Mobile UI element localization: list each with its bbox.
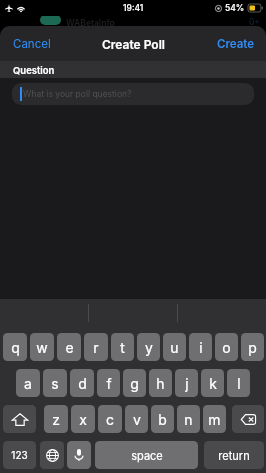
button[interactable]: c <box>98 405 122 433</box>
staticText: p <box>248 339 257 356</box>
button[interactable]: Cancel <box>0 31 61 57</box>
button[interactable]: Next keyboard <box>40 441 64 469</box>
staticText: What is your poll question? <box>23 89 132 99</box>
staticText: j <box>185 375 189 392</box>
staticText: a <box>24 375 32 392</box>
staticText: b <box>158 411 167 428</box>
staticText: space <box>131 449 163 462</box>
staticText: Create <box>217 37 255 51</box>
button[interactable]: u <box>163 333 186 361</box>
button[interactable]: e <box>57 333 81 361</box>
button[interactable]: s <box>43 369 67 397</box>
button[interactable]: v <box>125 405 148 433</box>
staticText: z <box>52 411 60 428</box>
button[interactable]: j <box>175 369 198 397</box>
button[interactable]: What is your poll question? <box>12 83 254 105</box>
button[interactable]: d <box>70 369 94 397</box>
staticText: v <box>133 411 141 428</box>
staticText: Cancel <box>13 37 51 51</box>
button[interactable]: l <box>227 369 250 397</box>
staticText: l <box>237 375 241 392</box>
button[interactable]: k <box>201 369 224 397</box>
staticText: t <box>120 339 125 356</box>
button[interactable]: i <box>189 333 212 361</box>
staticText: return <box>218 449 250 462</box>
staticText: WABetaInfo <box>66 18 115 26</box>
staticText: 54% <box>225 3 245 13</box>
staticText: 0+ <box>249 17 260 26</box>
staticText: n <box>184 411 193 428</box>
button[interactable]: Dictation <box>67 441 91 469</box>
button[interactable]: Shift <box>3 405 36 433</box>
staticText: i <box>199 339 203 356</box>
staticText: x <box>79 411 87 428</box>
button[interactable]: m <box>203 405 226 433</box>
staticText: Question <box>13 65 55 76</box>
staticText: y <box>145 339 153 356</box>
button[interactable]: a <box>16 369 40 397</box>
button[interactable]: h <box>149 369 172 397</box>
staticText: d <box>78 375 87 392</box>
staticText: w <box>36 339 48 356</box>
button[interactable]: r <box>84 333 108 361</box>
button[interactable]: n <box>177 405 200 433</box>
staticText: f <box>106 375 112 392</box>
button[interactable]: return <box>204 441 264 469</box>
button[interactable]: o <box>215 333 238 361</box>
button[interactable]: q <box>3 333 27 361</box>
staticText: k <box>209 375 217 392</box>
staticText: h <box>156 375 165 392</box>
staticText: u <box>170 339 179 356</box>
button[interactable]: x <box>71 405 95 433</box>
staticText: c <box>106 411 114 428</box>
button[interactable]: f <box>97 369 120 397</box>
staticText: 123 <box>11 449 28 461</box>
staticText: Create Poll <box>102 37 165 52</box>
staticText: 19:41 <box>123 3 144 13</box>
staticText: o <box>222 339 231 356</box>
button[interactable]: g <box>123 369 146 397</box>
button[interactable]: z <box>44 405 68 433</box>
staticText: q <box>11 339 20 356</box>
button[interactable]: 123 <box>3 441 36 469</box>
button[interactable]: b <box>151 405 174 433</box>
button[interactable]: w <box>30 333 54 361</box>
staticText: e <box>65 339 74 356</box>
button[interactable]: p <box>241 333 264 361</box>
button[interactable]: space <box>95 441 198 469</box>
staticText: g <box>130 375 139 392</box>
staticText: r <box>93 339 99 356</box>
staticText: m <box>208 411 221 428</box>
button[interactable]: t <box>111 333 134 361</box>
button[interactable]: y <box>137 333 160 361</box>
button[interactable]: Create <box>207 31 266 57</box>
button[interactable]: Backspace <box>232 405 264 433</box>
staticText: s <box>51 375 59 392</box>
